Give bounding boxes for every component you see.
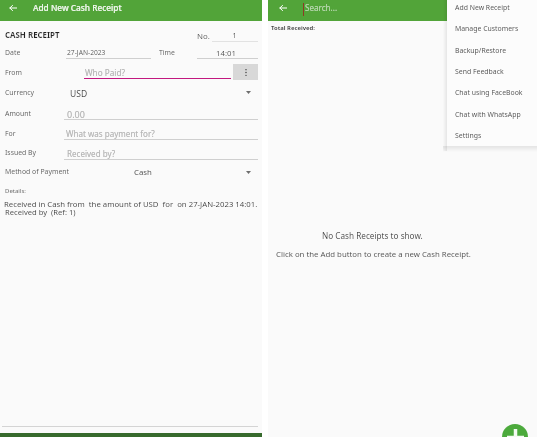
- button[interactable]: [3, 45, 151, 61]
- button[interactable]: Search: [298, 0, 443, 21]
- button[interactable]: [3, 147, 258, 164]
- staticText: From: [5, 68, 22, 77]
- staticText: Received by (Ref: 1): [5, 207, 76, 217]
- staticText: Send Feedback: [455, 67, 504, 76]
- staticText: No.: [197, 31, 210, 42]
- staticText: USD: [70, 88, 88, 100]
- button[interactable]: [3, 127, 258, 144]
- staticText: No Cash Receipts to show.: [322, 230, 423, 241]
- button[interactable]: [3, 165, 258, 182]
- button[interactable]: Chat using FaceBook: [447, 82, 537, 103]
- staticText: Cash: [134, 167, 152, 178]
- staticText: Search...: [305, 2, 338, 13]
- staticText: For: [5, 129, 16, 138]
- staticText: Issued By: [5, 148, 37, 157]
- button[interactable]: Backup/Restore: [447, 40, 537, 61]
- staticText: 1: [212, 31, 257, 41]
- staticText: Amount: [5, 109, 32, 118]
- staticText: 14:01: [197, 48, 255, 59]
- button[interactable]: [3, 86, 258, 103]
- staticText: Time: [159, 48, 175, 57]
- button[interactable]: Chat with WhatsApp: [447, 104, 537, 125]
- button[interactable]: Add: [502, 424, 528, 437]
- button[interactable]: Settings: [447, 125, 537, 146]
- button[interactable]: Choose contact: [233, 64, 258, 80]
- staticText: Currency: [5, 88, 35, 97]
- staticText: CASH RECEIPT: [5, 30, 60, 41]
- button[interactable]: [84, 63, 231, 80]
- button[interactable]: Send Feedback: [447, 61, 537, 82]
- staticText: Settings: [455, 131, 482, 140]
- staticText: Chat using FaceBook: [455, 88, 523, 97]
- staticText: 0.00: [67, 108, 85, 120]
- button[interactable]: Back: [3, 1, 22, 20]
- staticText: Add New Receipt: [455, 3, 510, 12]
- staticText: Click on the Add button to create a new …: [276, 249, 471, 260]
- staticText: Backup/Restore: [455, 46, 507, 55]
- staticText: Total Received:: [271, 24, 315, 32]
- staticText: What was payment for?: [66, 128, 155, 139]
- button[interactable]: [211, 29, 258, 43]
- staticText: 27-JAN-2023: [67, 48, 106, 57]
- staticText: Chat with WhatsApp: [455, 110, 521, 119]
- staticText: Received in Cash from the amount of USD …: [4, 199, 258, 210]
- staticText: Details:: [5, 187, 26, 195]
- button[interactable]: [3, 106, 258, 123]
- staticText: Received by?: [67, 148, 116, 159]
- staticText: Date: [5, 48, 21, 57]
- button[interactable]: Back: [272, 1, 291, 20]
- button[interactable]: Add New Receipt: [447, 0, 537, 18]
- staticText: Manage Customers: [455, 24, 519, 33]
- staticText: Who Paid?: [85, 67, 126, 78]
- staticText: Method of Payment: [5, 167, 70, 176]
- staticText: Add New Cash Receipt: [33, 2, 122, 13]
- button[interactable]: [155, 45, 259, 61]
- button[interactable]: Manage Customers: [447, 18, 537, 39]
